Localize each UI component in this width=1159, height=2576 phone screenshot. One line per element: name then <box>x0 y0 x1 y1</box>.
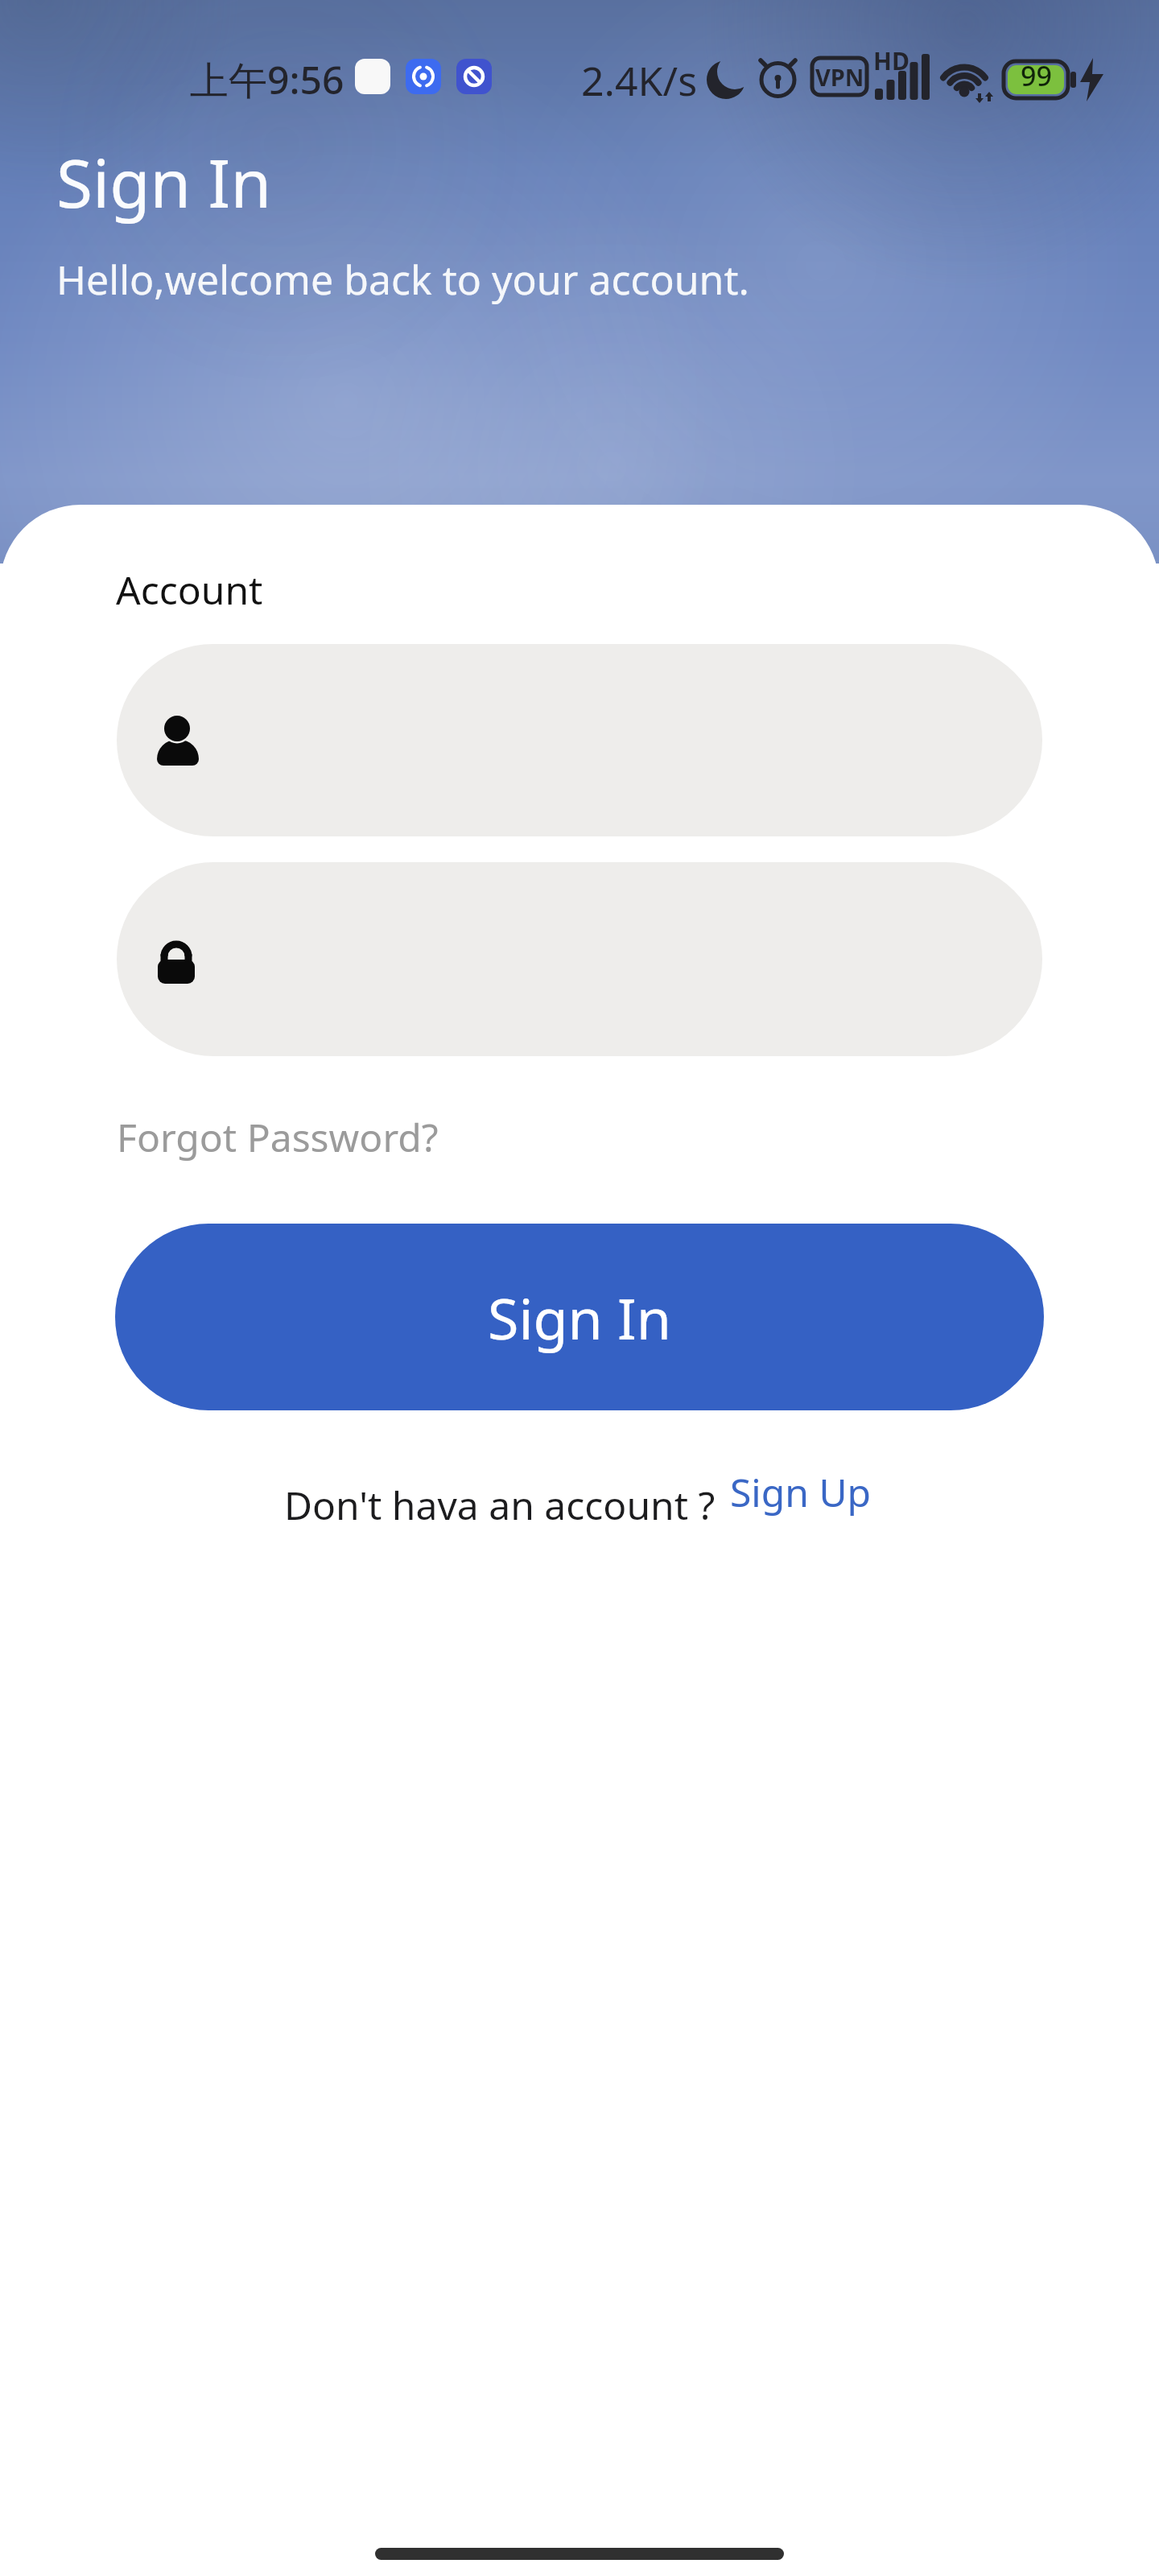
staticText: HD <box>873 44 909 77</box>
staticText: Account <box>116 563 263 616</box>
staticText: 99 <box>1021 57 1052 94</box>
button[interactable]: Sign In <box>115 1224 1044 1410</box>
staticText: 2.4K/s <box>581 53 698 108</box>
button[interactable] <box>117 862 1042 1056</box>
button[interactable] <box>117 644 1042 836</box>
button[interactable]: Forgot Password? <box>117 1111 439 1163</box>
staticText: Sign In <box>488 1279 671 1356</box>
staticText: Hello,welcome back to your account. <box>56 252 749 307</box>
staticText: 上午9:56 <box>190 53 344 106</box>
staticText: Don't hava an account ? <box>284 1479 716 1531</box>
staticText: Sign In <box>56 137 272 227</box>
button[interactable]: Sign Up <box>730 1466 872 1518</box>
staticText: VPN <box>815 61 864 93</box>
